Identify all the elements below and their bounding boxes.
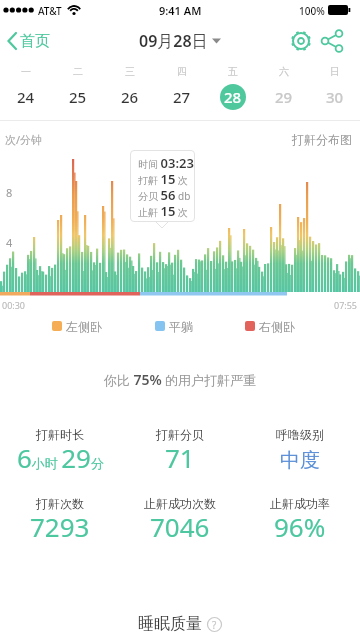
staticText: 29 <box>275 87 293 107</box>
staticText: ? <box>212 618 217 632</box>
staticText: 呼噜级别 <box>276 427 324 442</box>
button[interactable]: 打鼾次数 <box>0 0 120 35</box>
staticText: 6小时 29分 <box>17 440 104 475</box>
button[interactable]: 日 <box>309 62 360 118</box>
staticText: 首页 <box>20 32 50 51</box>
staticText: 分贝 56 db <box>138 186 191 202</box>
button[interactable]: 打鼾分贝 <box>120 0 240 35</box>
staticText: 打鼾 15 次 <box>138 170 189 186</box>
staticText: 你比 75% 的用户打鼾严重 <box>104 370 257 389</box>
staticText: 睡眠质量 <box>138 614 202 634</box>
button[interactable]: 二 <box>52 62 104 118</box>
button[interactable]: 右侧卧 <box>245 318 295 334</box>
button[interactable]: 五 <box>207 62 258 118</box>
staticText: 止鼾 15 次 <box>138 202 189 218</box>
button[interactable]: 三 <box>104 62 156 118</box>
staticText: 四 <box>177 65 187 78</box>
staticText: 96% <box>274 509 326 544</box>
button[interactable]: 打鼾时长 <box>0 0 120 35</box>
button[interactable]: 平躺 <box>155 318 193 334</box>
button[interactable]: 09月28日 <box>139 30 221 52</box>
staticText: 右侧卧 <box>259 319 295 334</box>
staticText: 次/分钟 <box>5 132 43 147</box>
staticText: 26 <box>121 87 139 107</box>
staticText: 25 <box>69 87 87 107</box>
staticText: 07:55 <box>334 299 358 311</box>
button[interactable]: 左侧卧 <box>52 318 102 334</box>
staticText: 00:30 <box>2 299 26 311</box>
staticText: 8 <box>6 185 13 200</box>
staticText: 100% <box>299 4 325 18</box>
staticText: 24 <box>17 87 35 107</box>
staticText: 27 <box>173 87 191 107</box>
staticText: 7293 <box>30 509 90 544</box>
staticText: 三 <box>125 65 135 78</box>
staticText: 打鼾分贝 <box>156 427 204 442</box>
staticText: 二 <box>73 65 83 78</box>
staticText: 28 <box>224 87 242 107</box>
button[interactable] <box>321 29 345 53</box>
staticText: 日 <box>330 65 340 78</box>
staticText: 止鼾成功次数 <box>144 496 216 511</box>
button[interactable]: 呼噜级别 <box>240 0 360 25</box>
button[interactable]: 六 <box>258 62 309 118</box>
staticText: 71 <box>165 440 195 475</box>
staticText: 平躺 <box>169 319 193 334</box>
button[interactable]: 止鼾成功率 <box>240 0 360 35</box>
staticText: 9:41 AM <box>159 3 202 18</box>
button[interactable]: 止鼾成功次数 <box>120 0 240 35</box>
staticText: 30 <box>326 87 344 107</box>
button[interactable]: 一 <box>0 62 52 118</box>
staticText: 六 <box>279 65 289 78</box>
staticText: 打鼾次数 <box>36 496 84 511</box>
staticText: 打鼾时长 <box>36 427 84 442</box>
staticText: 09月28日 <box>139 30 208 52</box>
staticText: 打鼾分布图 <box>292 132 352 147</box>
button[interactable]: 睡眠质量 <box>0 612 360 636</box>
staticText: 7046 <box>150 509 210 544</box>
staticText: 中度 <box>280 448 320 473</box>
staticText: 一 <box>21 65 31 78</box>
staticText: 时间 03:23 <box>138 154 194 170</box>
button[interactable]: 四 <box>156 62 207 118</box>
staticText: 4 <box>6 235 13 250</box>
staticText: AT&T <box>38 4 62 18</box>
staticText: 止鼾成功率 <box>270 496 330 511</box>
staticText: 五 <box>228 65 238 78</box>
button[interactable]: 首页 <box>6 20 50 62</box>
staticText: 左侧卧 <box>66 319 102 334</box>
button[interactable] <box>289 29 313 53</box>
